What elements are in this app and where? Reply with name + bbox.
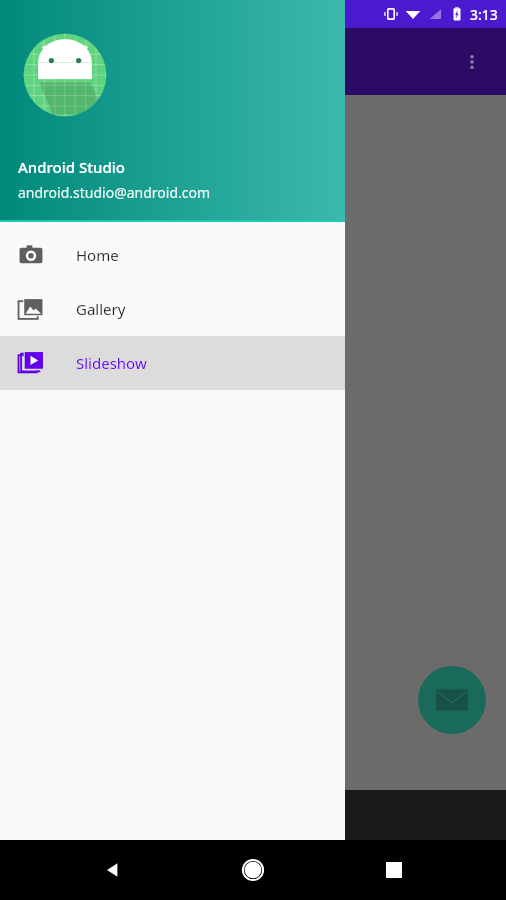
button[interactable]: Recents bbox=[366, 842, 422, 898]
button[interactable]: Send email bbox=[418, 666, 486, 734]
button[interactable]: Gallery bbox=[0, 282, 345, 336]
button[interactable]: Home bbox=[0, 228, 345, 282]
button[interactable]: Back bbox=[85, 842, 141, 898]
staticText: android.studio@android.com bbox=[18, 183, 211, 202]
staticText: Gallery bbox=[76, 299, 126, 319]
button[interactable]: More options bbox=[448, 38, 496, 86]
button[interactable]: Slideshow bbox=[0, 336, 345, 390]
staticText: Slideshow bbox=[76, 353, 147, 373]
button[interactable]: Home bbox=[225, 842, 281, 898]
staticText: Home bbox=[76, 245, 119, 265]
staticText: 3:13 bbox=[470, 5, 498, 24]
staticText: Android Studio bbox=[18, 157, 125, 177]
